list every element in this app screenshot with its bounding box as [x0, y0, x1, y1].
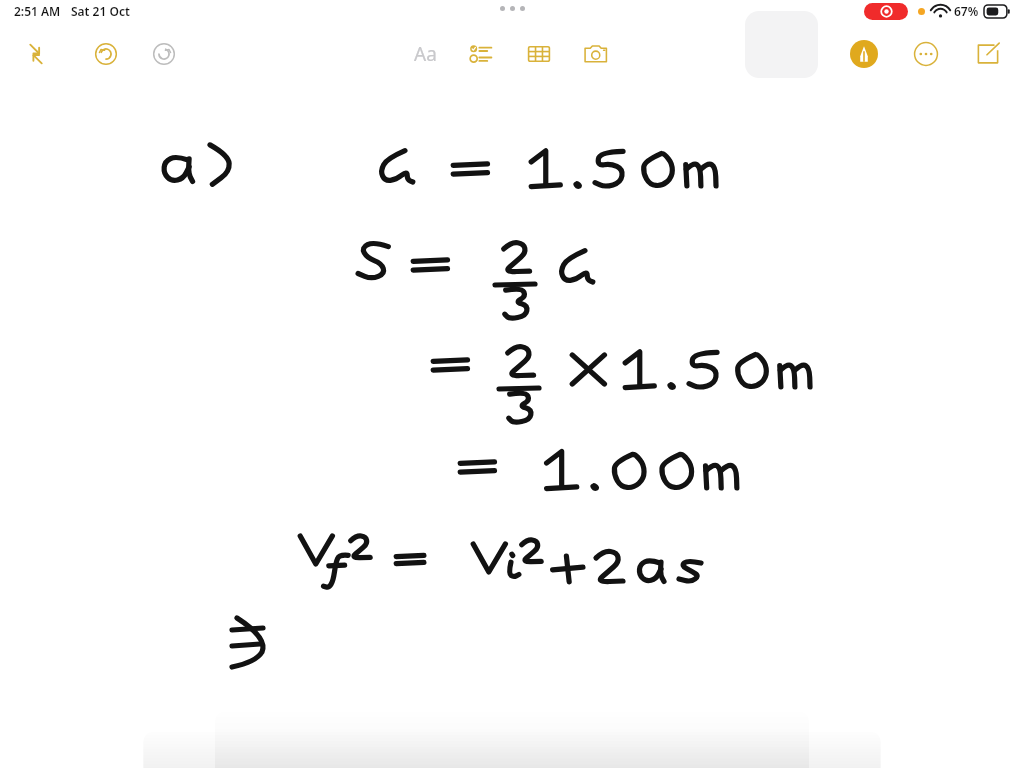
- button[interactable]: Camera: [575, 33, 617, 75]
- button[interactable]: Share: [780, 32, 824, 76]
- button[interactable]: Redo: [144, 34, 184, 74]
- staticText: Sat 21 Oct: [71, 3, 130, 19]
- button[interactable]: Collapse: [16, 34, 56, 74]
- staticText: 2:51 AM: [14, 3, 61, 19]
- button[interactable]: Checklist: [461, 33, 503, 75]
- staticText: 67%: [954, 3, 979, 19]
- staticText: Aa: [414, 41, 437, 67]
- button[interactable]: Undo: [86, 34, 126, 74]
- button[interactable]: New note: [966, 32, 1010, 76]
- button[interactable]: Text: [404, 33, 446, 75]
- button[interactable]: Table: [518, 33, 560, 75]
- button[interactable]: More: [904, 32, 948, 76]
- button[interactable]: Markup: [842, 32, 886, 76]
